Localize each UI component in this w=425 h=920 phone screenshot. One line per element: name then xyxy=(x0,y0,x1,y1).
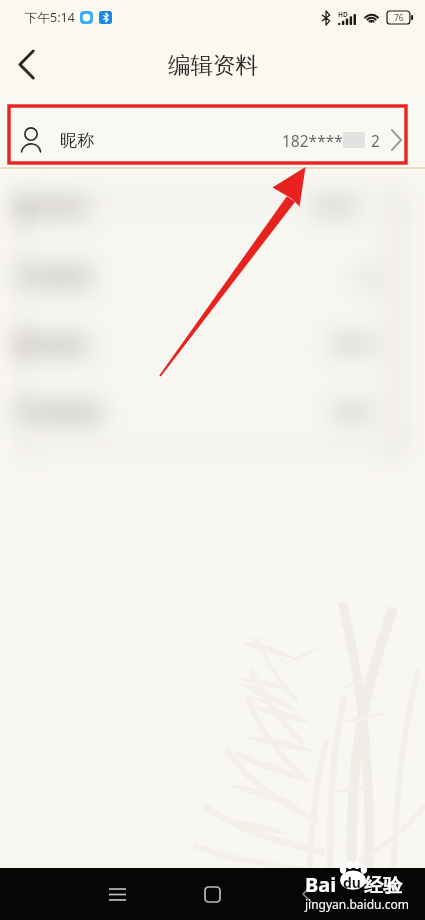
button[interactable]: Home xyxy=(190,872,234,916)
staticText: jingyan.baidu.com xyxy=(305,896,409,912)
staticText: 76 xyxy=(394,12,404,24)
staticText: 昵称 xyxy=(60,130,94,151)
staticText: 182**** xyxy=(282,130,343,151)
staticText: 经验 xyxy=(364,874,402,898)
staticText: 2 xyxy=(371,130,380,151)
button[interactable]: Menu xyxy=(95,872,139,916)
staticText: du xyxy=(343,873,361,892)
staticText: 下午5:14 xyxy=(25,9,75,26)
button[interactable]: Back xyxy=(285,872,329,916)
staticText: 编辑资料 xyxy=(168,51,258,79)
button[interactable]: 昵称 xyxy=(0,93,425,167)
staticText: HD xyxy=(338,10,348,19)
button[interactable]: Back xyxy=(2,40,50,88)
staticText: Bai xyxy=(305,871,337,898)
